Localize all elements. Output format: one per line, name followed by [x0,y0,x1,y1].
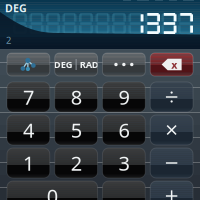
button[interactable]: Divide [150,82,193,112]
staticText: 4 [23,117,34,143]
button[interactable]: 4 [7,115,50,145]
staticText: x [171,57,177,72]
staticText: 5 [71,117,82,143]
staticText: 3 [118,150,129,176]
staticText: 8 [71,84,82,110]
staticText: 7 [23,84,34,110]
button[interactable]: 1 [7,148,50,178]
button[interactable]: 9 [102,82,145,112]
staticText: DEG [54,58,73,71]
staticText: DEG [5,1,27,15]
button[interactable]: . [102,181,145,200]
button[interactable]: Minus [150,148,193,178]
staticText: 2 [6,34,11,46]
button[interactable]: 6 [102,115,145,145]
button[interactable]: Delete [150,53,193,76]
button[interactable]: 0 [7,181,97,200]
button[interactable]: More [102,53,145,76]
button[interactable]: Multiply [150,115,193,145]
button[interactable]: 7 [7,82,50,112]
staticText: 1 [23,150,34,176]
button[interactable]: Plus [150,181,193,200]
button[interactable]: 8 [55,82,98,112]
button[interactable]: Scientific functions [7,53,50,76]
staticText: RAD [80,58,99,71]
button[interactable]: DEG [55,53,98,76]
button[interactable]: 3 [102,148,145,178]
staticText: 9 [118,84,129,110]
staticText: 2 [71,150,82,176]
staticText: 6 [118,117,129,143]
staticText: 0 [47,183,58,200]
button[interactable]: 2 [55,148,98,178]
button[interactable]: 5 [55,115,98,145]
staticText: . [121,181,127,200]
